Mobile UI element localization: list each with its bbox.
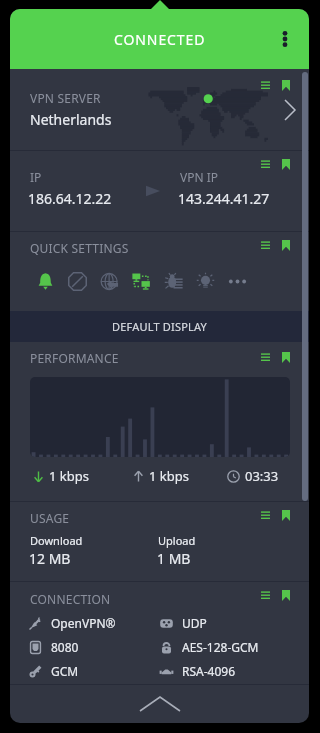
staticText: 8080 (51, 639, 79, 655)
staticText: 12 MB (29, 549, 71, 568)
button[interactable]: LAN (125, 265, 157, 297)
button[interactable]: Bookmark (276, 75, 296, 95)
staticText: QUICK SETTINGS (30, 240, 129, 256)
other: Open server list (278, 98, 302, 122)
button[interactable]: More options (272, 26, 298, 52)
button[interactable]: CONNECTION (10, 582, 309, 684)
staticText: OpenVPN® (51, 615, 116, 631)
staticText: VPN IP (180, 169, 219, 185)
staticText: 1 MB (157, 549, 191, 568)
staticText: Netherlands (30, 110, 112, 129)
button[interactable]: Collapse (10, 685, 309, 723)
staticText: Download (30, 533, 83, 548)
button[interactable]: USAGE (10, 502, 309, 581)
staticText: 1 kbps (49, 467, 89, 485)
button[interactable]: Block ads (61, 265, 93, 297)
staticText: UDP (182, 615, 207, 631)
staticText: 186.64.12.22 (28, 189, 112, 208)
button[interactable]: DEFAULT DISPLAY (10, 311, 309, 342)
staticText: CONNECTED (114, 30, 206, 49)
button[interactable]: Tips (189, 265, 221, 297)
button[interactable]: CONNECTED (10, 9, 309, 69)
button[interactable]: Language (93, 265, 125, 297)
button[interactable]: Notifications (29, 265, 61, 297)
staticText: 03:33 (245, 467, 279, 485)
staticText: AES-128-GCM (182, 639, 259, 655)
staticText: USAGE (30, 510, 70, 526)
staticText: RSA-4096 (182, 663, 236, 679)
button[interactable]: Menu (255, 235, 275, 255)
button[interactable]: Menu (255, 505, 275, 525)
staticText: Upload (158, 533, 196, 548)
button[interactable]: VPN SERVER (10, 69, 309, 150)
staticText: 1 kbps (149, 467, 189, 485)
staticText: VPN SERVER (30, 90, 101, 106)
button[interactable]: More (221, 265, 253, 297)
button[interactable]: Menu (255, 585, 275, 605)
button[interactable]: Menu (255, 347, 275, 367)
staticText: CONNECTION (30, 591, 111, 607)
button[interactable]: Menu (255, 75, 275, 95)
button[interactable]: Bookmark (276, 154, 296, 174)
button[interactable]: IP (10, 151, 309, 231)
button[interactable]: Bookmark (276, 505, 296, 525)
staticText: IP (30, 169, 42, 185)
staticText: DEFAULT DISPLAY (112, 319, 208, 334)
button[interactable]: Bookmark (276, 585, 296, 605)
staticText: 143.244.41.27 (178, 189, 270, 208)
staticText: PERFORMANCE (30, 350, 119, 366)
button[interactable]: Bookmark (276, 347, 296, 367)
button[interactable]: Debug (157, 265, 189, 297)
staticText: GCM (51, 663, 79, 679)
button[interactable]: Bookmark (276, 235, 296, 255)
button[interactable]: Menu (255, 154, 275, 174)
